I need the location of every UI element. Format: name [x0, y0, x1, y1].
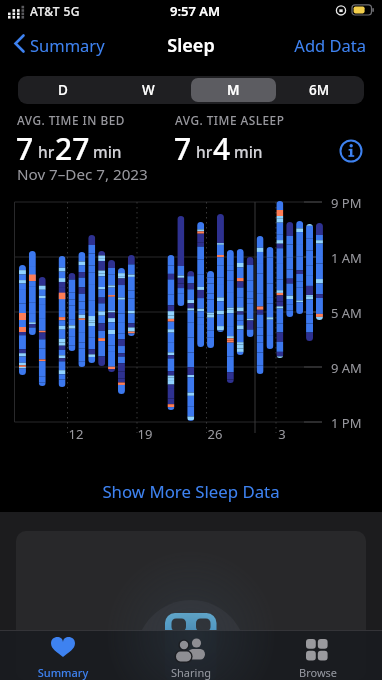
staticText: 4 [213, 128, 253, 680]
button[interactable]: Add Data [280, 30, 366, 58]
button[interactable]: Summary [0, 631, 127, 680]
staticText: 19 [130, 425, 160, 680]
staticText: M [227, 81, 240, 99]
staticText: 26 [200, 425, 230, 680]
button[interactable]: Show More Sleep Data [0, 480, 382, 680]
button[interactable]: Summary [8, 30, 118, 58]
button[interactable] [16, 531, 366, 680]
staticText: Add Data [280, 34, 366, 62]
staticText: AT&T 5G [30, 3, 100, 680]
staticText: 5 AM [331, 304, 381, 680]
staticText: hr [196, 141, 226, 680]
staticText: 9 AM [331, 359, 381, 680]
staticText: 3 [267, 425, 297, 680]
staticText: Browse [268, 665, 368, 680]
staticText: 27 [55, 128, 115, 680]
button[interactable]: Browse [255, 631, 382, 680]
button[interactable]: M [191, 76, 276, 104]
staticText: min [93, 141, 135, 680]
button[interactable]: W [106, 76, 191, 104]
staticText: Summary [13, 665, 113, 680]
staticText: AVG. TIME IN BED [17, 112, 182, 680]
staticText: 7 [174, 128, 214, 680]
staticText: 12 [61, 425, 91, 680]
staticText: min [234, 141, 276, 680]
button[interactable] [338, 138, 364, 164]
staticText: 9:57 AM [140, 2, 250, 680]
staticText: Summary [30, 34, 120, 62]
staticText: hr [38, 141, 68, 680]
button[interactable]: 6M [277, 76, 362, 104]
staticText: Sharing [141, 665, 241, 680]
staticText: 9 PM [331, 194, 381, 680]
staticText: AVG. TIME ASLEEP [175, 112, 340, 680]
button[interactable]: Sharing [127, 631, 255, 680]
staticText: 6M [309, 81, 330, 99]
staticText: 1 PM [331, 414, 381, 680]
staticText: 7 [16, 128, 56, 680]
staticText: Sleep [141, 33, 241, 680]
staticText: Nov 7–Dec 7, 2023 [17, 164, 227, 680]
button[interactable]: D [20, 76, 105, 104]
staticText: Show More Sleep Data [0, 480, 382, 680]
staticText: W [142, 81, 155, 99]
staticText: 1 AM [331, 249, 381, 680]
staticText: D [58, 81, 68, 99]
